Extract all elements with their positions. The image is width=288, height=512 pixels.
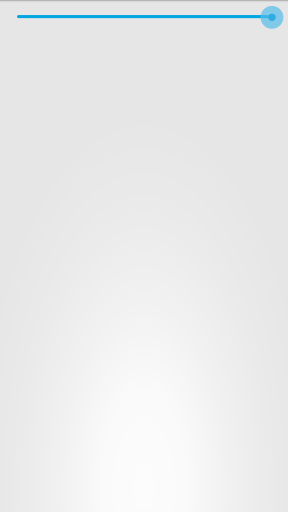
button[interactable]: Volume slider — [0, 0, 288, 34]
